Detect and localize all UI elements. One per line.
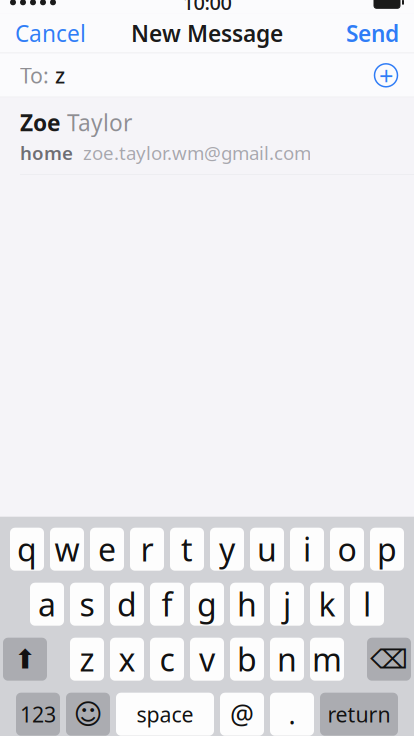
staticText: q <box>17 528 37 570</box>
button[interactable]: g <box>190 583 224 626</box>
staticText: return <box>327 700 390 728</box>
button[interactable]: Zoe <box>0 97 414 175</box>
button[interactable]: space <box>116 693 214 736</box>
staticText: space <box>136 700 193 728</box>
button[interactable]: s <box>70 583 104 626</box>
staticText: h <box>237 583 257 625</box>
button[interactable]: t <box>170 528 204 571</box>
button[interactable]: r <box>130 528 164 571</box>
staticText: y <box>219 528 235 570</box>
staticText: Taylor <box>61 107 132 137</box>
staticText: v <box>199 638 215 680</box>
button[interactable]: u <box>250 528 284 571</box>
button[interactable]: j <box>270 583 304 626</box>
button[interactable]: k <box>310 583 344 626</box>
staticText: l <box>363 583 371 625</box>
button[interactable]: e <box>90 528 124 571</box>
staticText: n <box>277 638 297 680</box>
staticText: Cancel <box>15 18 86 48</box>
staticText: To: <box>20 61 49 89</box>
button[interactable]: n <box>270 638 304 681</box>
staticText: . <box>288 696 295 732</box>
staticText: s <box>79 583 94 625</box>
staticText: e <box>98 528 116 570</box>
staticText: r <box>140 528 153 570</box>
button[interactable]: Add contact <box>366 55 406 95</box>
staticText: g <box>197 583 217 625</box>
staticText: ⬆ <box>14 644 36 674</box>
staticText: t <box>181 528 193 570</box>
staticText: zoe.taylor.wm@gmail.com <box>73 140 311 165</box>
staticText: Send <box>346 18 399 48</box>
staticText: 10:00 <box>182 0 231 16</box>
staticText: ☺ <box>73 698 102 730</box>
button[interactable]: o <box>330 528 364 571</box>
button[interactable]: Delete <box>367 638 411 681</box>
button[interactable]: i <box>290 528 324 571</box>
staticText: c <box>159 638 174 680</box>
staticText: Zoe <box>20 107 61 137</box>
staticText: o <box>337 528 356 570</box>
button[interactable]: d <box>110 583 144 626</box>
button[interactable]: Cancel <box>3 10 98 56</box>
staticText: b <box>237 638 257 680</box>
button[interactable]: Send <box>334 10 411 56</box>
button[interactable]: m <box>310 638 344 681</box>
button[interactable]: v <box>190 638 224 681</box>
button[interactable]: return <box>320 693 398 736</box>
staticText: home <box>20 140 73 165</box>
button[interactable]: b <box>230 638 264 681</box>
staticText: j <box>283 583 291 625</box>
button[interactable]: l <box>350 583 384 626</box>
button[interactable]: Shift <box>3 638 47 681</box>
button[interactable]: . <box>270 693 314 736</box>
staticText: u <box>257 528 277 570</box>
staticText: i <box>303 528 311 570</box>
staticText: z <box>49 61 65 89</box>
staticText: k <box>318 583 335 625</box>
button[interactable]: p <box>370 528 404 571</box>
staticText: ⌫ <box>370 644 408 674</box>
staticText: m <box>312 638 342 680</box>
staticText: z <box>79 638 94 680</box>
staticText: x <box>118 638 135 680</box>
button[interactable]: 123 <box>16 693 60 736</box>
button[interactable]: @ <box>220 693 264 736</box>
button[interactable]: Emoji <box>66 693 110 736</box>
button[interactable]: y <box>210 528 244 571</box>
button[interactable]: w <box>50 528 84 571</box>
staticText: d <box>117 583 137 625</box>
staticText: p <box>377 528 397 570</box>
button[interactable]: f <box>150 583 184 626</box>
staticText: a <box>38 583 56 625</box>
button[interactable]: h <box>230 583 264 626</box>
button[interactable]: x <box>110 638 144 681</box>
button[interactable]: a <box>30 583 64 626</box>
staticText: f <box>161 583 172 625</box>
staticText: w <box>54 528 79 570</box>
staticText: 123 <box>20 700 56 728</box>
button[interactable]: c <box>150 638 184 681</box>
staticText: + <box>379 58 393 92</box>
button[interactable]: z <box>70 638 104 681</box>
button[interactable]: q <box>10 528 44 571</box>
staticText: New Message <box>131 18 283 48</box>
staticText: @ <box>230 696 254 732</box>
